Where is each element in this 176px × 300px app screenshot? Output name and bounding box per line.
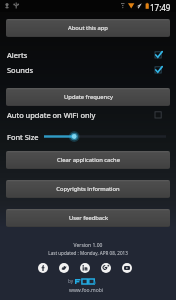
staticText: Version 1.00 [0,242,176,249]
staticText: Alerts [7,50,28,60]
button[interactable]: Sounds [0,62,176,77]
button[interactable]: Auto update on WiFi only [0,107,176,122]
staticText: Copyrights information [56,185,120,193]
staticText: Auto update on WiFi only [7,110,96,120]
staticText: Last updated : Monday, APR 08, 2013 [0,250,176,256]
staticText: www.foo.mobi [0,287,174,294]
button[interactable]: Alerts [0,47,176,62]
staticText: Sounds [7,65,34,75]
button[interactable]: About this app [6,19,170,37]
button[interactable]: YouTube [122,263,132,273]
button[interactable]: Update frequency [6,88,170,106]
staticText: 17:49 [150,2,171,13]
button[interactable]: Google Plus [101,263,111,273]
staticText: Update frequency [64,93,113,101]
button[interactable]: LinkedIn [80,263,90,273]
staticText: User feedback [69,214,108,222]
staticText: Font Size [7,132,39,142]
button[interactable]: Copyrights information [6,180,170,198]
button[interactable]: User feedback [6,209,170,227]
button[interactable]: Clear application cache [6,151,170,169]
staticText: About this app [68,24,108,32]
button[interactable]: Facebook [38,263,48,273]
staticText: Clear application cache [57,156,120,164]
button[interactable]: Twitter [59,263,69,273]
staticText: by [68,278,75,284]
